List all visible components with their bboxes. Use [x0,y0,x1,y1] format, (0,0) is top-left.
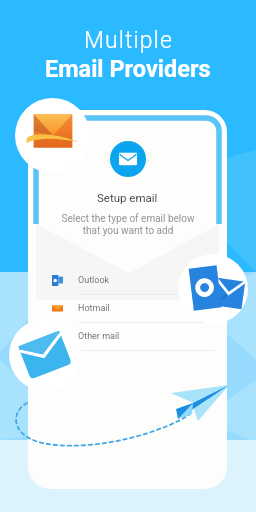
button[interactable]: Hotmail [52,295,215,323]
button[interactable]: Outlook [52,267,215,295]
button[interactable]: Other mail [9,319,81,391]
button[interactable]: Outlook [178,254,248,324]
staticText: Outlook [78,275,110,286]
staticText: Multiple [84,27,173,54]
staticText: Other mail [78,331,120,342]
staticText: Setup email [97,191,158,204]
staticText: Hotmail [78,303,110,314]
staticText: Select the type of email below that you … [61,213,195,236]
button[interactable]: Hotmail [15,98,90,173]
button[interactable]: Other mail [52,323,215,351]
staticText: Email Providers [45,55,211,83]
